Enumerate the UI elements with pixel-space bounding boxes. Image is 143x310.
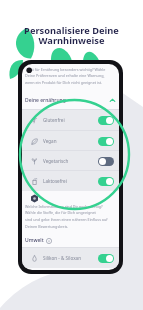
staticText: Glutenfrei — [43, 117, 65, 123]
staticText: Deine ernährung — [25, 97, 66, 104]
staticText: Vegetarisch — [43, 158, 69, 164]
staticText: Personalisiere Deine Warnhinweise — [0, 24, 143, 47]
button[interactable]: Umwelt — [25, 236, 119, 245]
button[interactable]: Vegan — [22, 131, 119, 151]
button[interactable]: Silikon - & Siloxan — [22, 248, 119, 268]
button[interactable]: Vegetarisch — [22, 151, 119, 171]
staticText: Welche Informationen sind Dir noch wicht… — [25, 204, 108, 229]
staticText: st für Ernährung besonders wichtig? Wähl… — [25, 67, 106, 86]
staticText: Laktosefrei — [43, 178, 67, 184]
other: Info — [46, 238, 52, 244]
staticText: Silikon - & Siloxan — [43, 255, 82, 261]
button[interactable]: Laktosefrei — [22, 171, 119, 191]
button[interactable]: Deine ernährung — [25, 96, 116, 104]
staticText: Umwelt — [25, 237, 44, 244]
other: Einklappen — [109, 97, 116, 104]
staticText: Vegan — [43, 138, 57, 144]
button[interactable]: Glutenfrei — [22, 110, 119, 130]
